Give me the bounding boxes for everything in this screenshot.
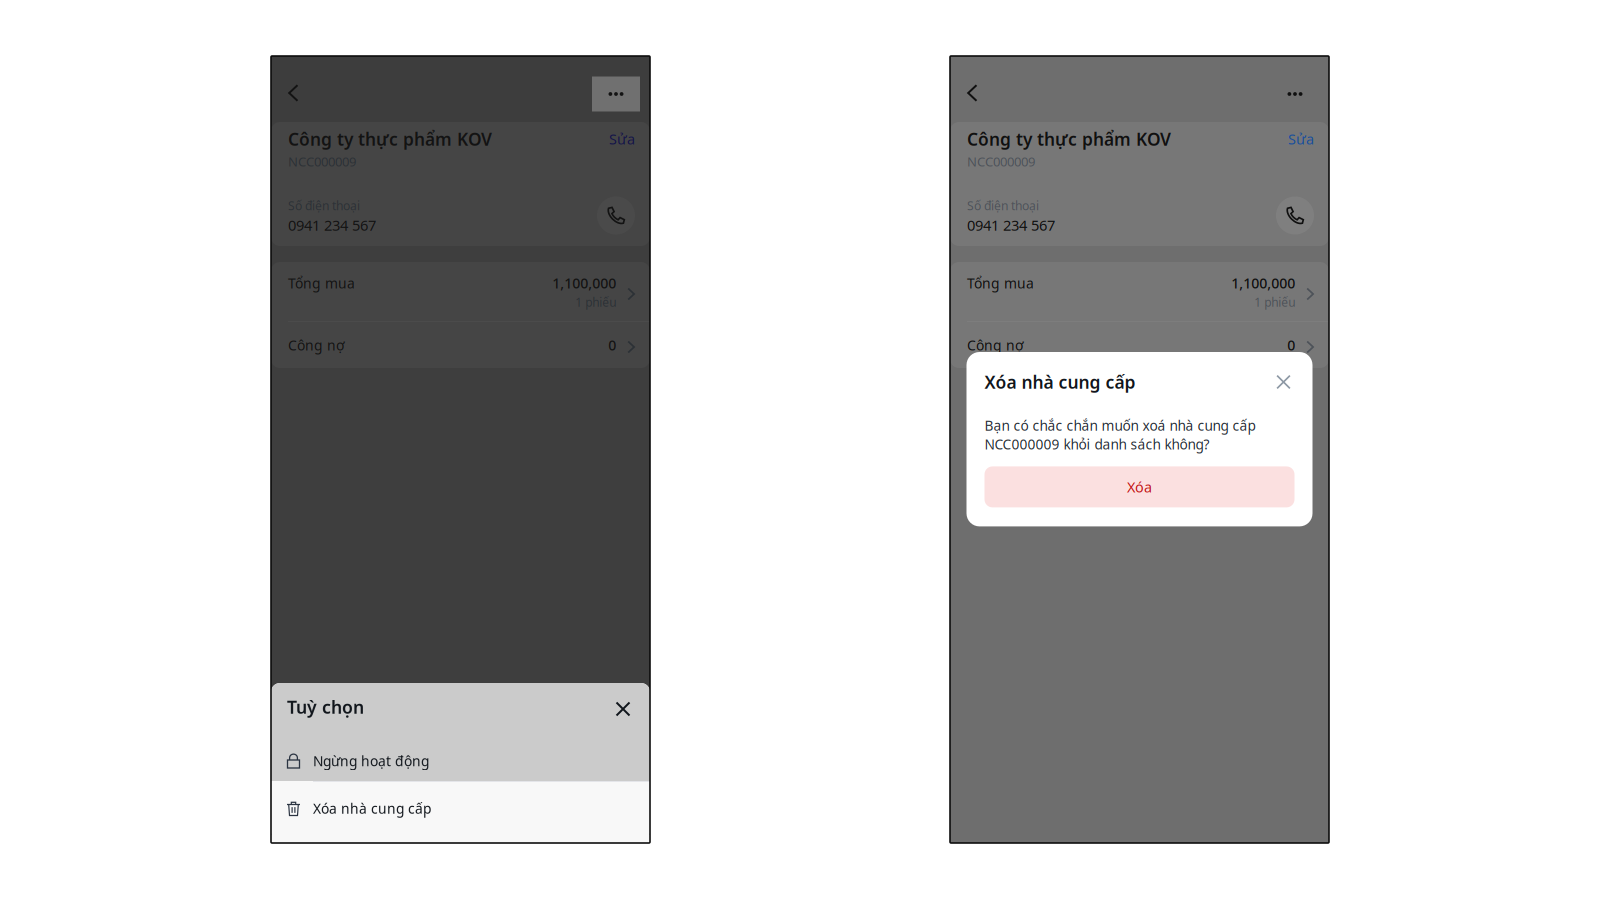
button[interactable]: Call xyxy=(597,196,635,234)
staticText: Sửa xyxy=(609,129,635,149)
staticText: Công nợ xyxy=(967,336,1024,354)
staticText: Xóa xyxy=(1127,477,1152,497)
staticText: Tuỳ chọn xyxy=(287,695,364,719)
staticText: 1 phiếu xyxy=(1254,294,1295,310)
button[interactable]: Xóa xyxy=(984,466,1294,507)
button[interactable]: Close xyxy=(1272,371,1294,393)
staticText: Công nợ xyxy=(288,336,345,354)
staticText: 1,100,000 xyxy=(1231,273,1295,293)
button[interactable]: Back xyxy=(950,71,995,115)
staticText: Số điện thoại xyxy=(288,197,360,214)
button[interactable]: More options xyxy=(1271,76,1319,111)
staticText: Ngừng hoạt động xyxy=(313,752,429,770)
staticText: Số điện thoại xyxy=(967,197,1039,214)
button[interactable]: Sửa xyxy=(1288,128,1314,150)
button[interactable]: More options xyxy=(592,76,640,111)
button[interactable]: Sửa xyxy=(609,128,635,150)
staticText: 0941 234 567 xyxy=(288,215,376,235)
button[interactable]: Ngừng hoạt động xyxy=(271,737,650,781)
button[interactable]: Xóa nhà cung cấp xyxy=(271,782,650,829)
button[interactable]: Tổng mua xyxy=(950,262,1329,321)
button[interactable]: Back xyxy=(271,71,316,115)
staticText: Bạn có chắc chắn muốn xoá nhà cung cấp N… xyxy=(984,416,1255,453)
staticText: Sửa xyxy=(1288,129,1314,149)
staticText: NCC000009 xyxy=(288,153,356,170)
staticText: NCC000009 xyxy=(967,153,1035,170)
button[interactable]: Công nợ xyxy=(950,322,1329,368)
staticText: Tổng mua xyxy=(967,274,1034,292)
staticText: Tổng mua xyxy=(288,274,355,292)
staticText: Công ty thực phẩm KOV xyxy=(967,127,1171,151)
button[interactable]: Công nợ xyxy=(271,322,650,368)
staticText: 0 xyxy=(1287,335,1295,355)
staticText: 1,100,000 xyxy=(552,273,616,293)
staticText: 0 xyxy=(608,335,616,355)
staticText: 1 phiếu xyxy=(575,294,616,310)
staticText: Công ty thực phẩm KOV xyxy=(288,127,492,151)
button[interactable]: Call xyxy=(1276,196,1314,234)
staticText: 0941 234 567 xyxy=(967,215,1055,235)
button[interactable]: Tổng mua xyxy=(271,262,650,321)
button[interactable]: Close xyxy=(609,695,637,723)
staticText: Xóa nhà cung cấp xyxy=(313,799,431,818)
staticText: Xóa nhà cung cấp xyxy=(984,370,1135,394)
